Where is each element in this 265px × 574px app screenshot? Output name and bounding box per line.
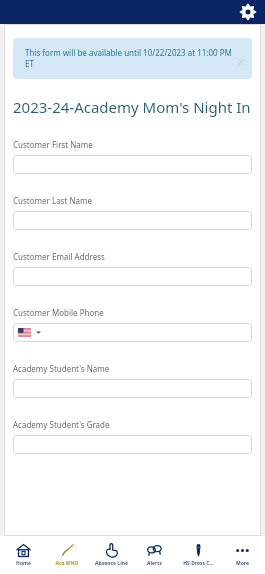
staticText: Customer Last Name bbox=[13, 195, 92, 206]
staticText: Customer Email Address bbox=[13, 251, 105, 262]
staticText: Absence Line bbox=[95, 560, 128, 567]
staticText: HS Dress C... bbox=[183, 560, 214, 567]
button[interactable] bbox=[13, 155, 252, 174]
button[interactable] bbox=[13, 211, 252, 230]
staticText: Academy Student's Grade bbox=[13, 419, 110, 430]
button[interactable]: Alerts bbox=[133, 541, 175, 569]
button[interactable]: Aca MNO bbox=[46, 541, 88, 569]
button[interactable]: Dismiss bbox=[236, 57, 246, 67]
staticText: Academy Student's Name bbox=[13, 363, 110, 374]
staticText: Home bbox=[16, 560, 31, 567]
button[interactable]: Settings bbox=[239, 3, 257, 21]
staticText: Customer Mobile Phone bbox=[13, 307, 104, 318]
button[interactable] bbox=[13, 267, 252, 286]
staticText: Aca MNO bbox=[55, 560, 79, 567]
staticText: This form will be available until 10/22/… bbox=[25, 47, 236, 70]
staticText: 2023-24-Academy Mom's Night In bbox=[13, 97, 251, 117]
staticText: Alerts bbox=[147, 560, 162, 567]
button[interactable]: More bbox=[221, 541, 263, 569]
button[interactable]: Home bbox=[2, 541, 44, 569]
button[interactable] bbox=[13, 379, 252, 398]
button[interactable]: Absence Line bbox=[90, 541, 132, 569]
staticText: More bbox=[236, 560, 249, 567]
button[interactable] bbox=[13, 323, 252, 342]
button[interactable] bbox=[13, 435, 252, 454]
button[interactable]: This form will be available until 10/22/… bbox=[13, 38, 252, 79]
button[interactable]: HS Dress C... bbox=[177, 541, 219, 569]
staticText: Customer First Name bbox=[13, 139, 93, 150]
